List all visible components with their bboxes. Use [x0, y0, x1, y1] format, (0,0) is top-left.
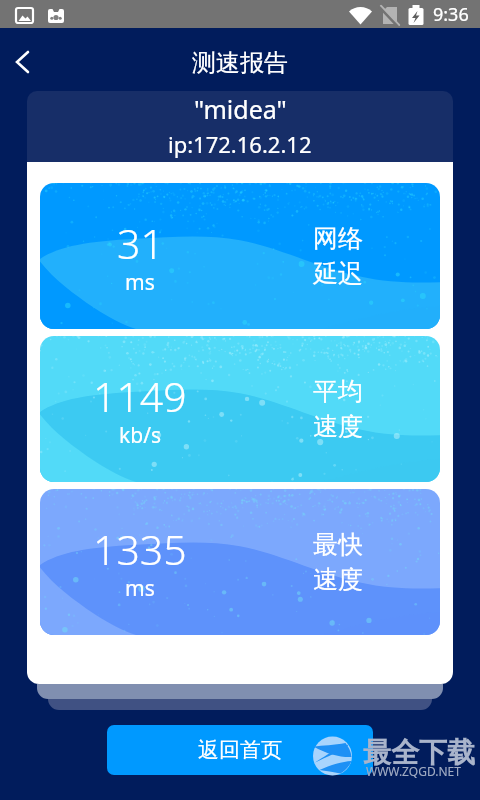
staticText: 最快: [313, 529, 363, 560]
staticText: ip:172.16.2.12: [168, 129, 312, 159]
staticText: 速度: [313, 564, 363, 595]
staticText: 最全下载: [363, 735, 475, 770]
staticText: ms: [125, 268, 155, 297]
staticText: 1149: [93, 368, 187, 424]
staticText: 返回首页: [198, 737, 282, 763]
staticText: ms: [125, 574, 155, 603]
staticText: kb/s: [119, 421, 161, 450]
staticText: 速度: [313, 411, 363, 442]
button[interactable]: 返回首页: [107, 725, 373, 775]
button[interactable]: 1149: [40, 336, 440, 482]
staticText: "midea": [194, 92, 287, 126]
button[interactable]: Back: [0, 40, 44, 84]
staticText: WWW.ZQGD.NET: [366, 763, 461, 779]
staticText: 网络: [313, 223, 363, 254]
staticText: 延迟: [313, 258, 363, 289]
staticText: 9:36: [433, 2, 469, 27]
button[interactable]: 31: [40, 183, 440, 329]
staticText: 平均: [313, 376, 363, 407]
staticText: 31: [117, 215, 164, 271]
staticText: 1335: [93, 521, 187, 577]
button[interactable]: 1335: [40, 489, 440, 635]
staticText: 测速报告: [192, 48, 288, 78]
